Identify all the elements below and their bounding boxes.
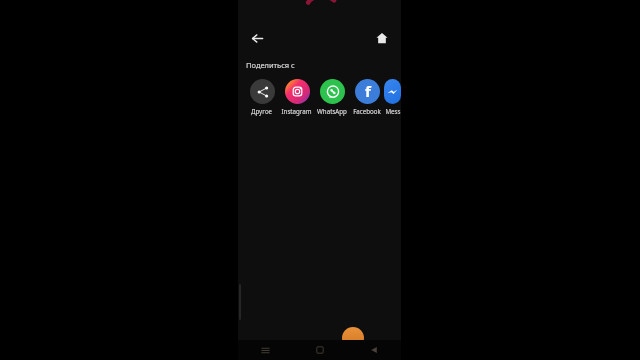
staticText: Mess bbox=[385, 107, 401, 115]
button[interactable]: Home bbox=[369, 25, 395, 51]
staticText: WhatsApp bbox=[317, 107, 347, 115]
button[interactable]: Home bbox=[293, 340, 347, 360]
staticText: Facebook bbox=[353, 107, 381, 115]
button[interactable]: Instagram bbox=[279, 77, 314, 115]
staticText: Другое bbox=[251, 107, 272, 115]
staticText: Поделиться с bbox=[246, 60, 295, 70]
button[interactable]: WhatsApp bbox=[314, 77, 349, 115]
button[interactable]: Action bbox=[342, 327, 364, 349]
button[interactable]: Back bbox=[347, 340, 401, 360]
button[interactable]: Recents bbox=[238, 340, 293, 360]
button[interactable]: Другое bbox=[244, 77, 279, 115]
button[interactable]: Back bbox=[244, 25, 270, 51]
button[interactable]: f bbox=[349, 77, 384, 115]
staticText: Instagram bbox=[281, 107, 312, 115]
staticText: f bbox=[365, 81, 371, 101]
button[interactable]: Mess bbox=[384, 77, 401, 115]
